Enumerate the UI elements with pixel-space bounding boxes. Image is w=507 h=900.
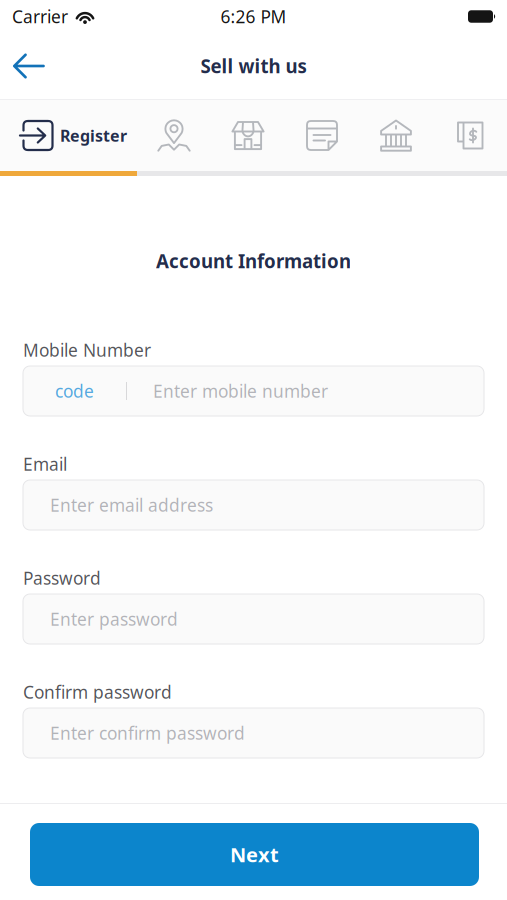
staticText: Enter mobile number (153, 379, 328, 402)
staticText: Enter confirm password (50, 721, 245, 744)
staticText: Password (23, 566, 101, 589)
button[interactable]: Enter email address (23, 480, 484, 530)
staticText: Email (23, 452, 67, 475)
staticText: Register (60, 125, 127, 146)
button[interactable]: Documents (285, 100, 359, 171)
button[interactable]: Back (0, 40, 58, 92)
staticText: Confirm password (23, 680, 172, 703)
button[interactable]: Register (0, 100, 137, 171)
staticText: Enter email address (50, 493, 213, 516)
button[interactable]: code (23, 366, 484, 416)
button[interactable]: Enter password (23, 594, 484, 644)
button[interactable]: Next (30, 823, 479, 886)
staticText: Mobile Number (23, 338, 151, 361)
staticText: Account Information (156, 249, 351, 273)
button[interactable]: Enter confirm password (23, 708, 484, 758)
staticText: Next (230, 841, 279, 868)
staticText: Enter password (50, 607, 178, 630)
button[interactable]: Payments (433, 100, 507, 171)
button[interactable]: Location (137, 100, 211, 171)
staticText: 6:26 PM (220, 5, 286, 28)
staticText: Carrier (12, 5, 68, 28)
staticText: Sell with us (200, 54, 306, 78)
staticText: code (55, 379, 94, 402)
button[interactable]: Store (211, 100, 285, 171)
button[interactable]: Bank account (359, 100, 433, 171)
